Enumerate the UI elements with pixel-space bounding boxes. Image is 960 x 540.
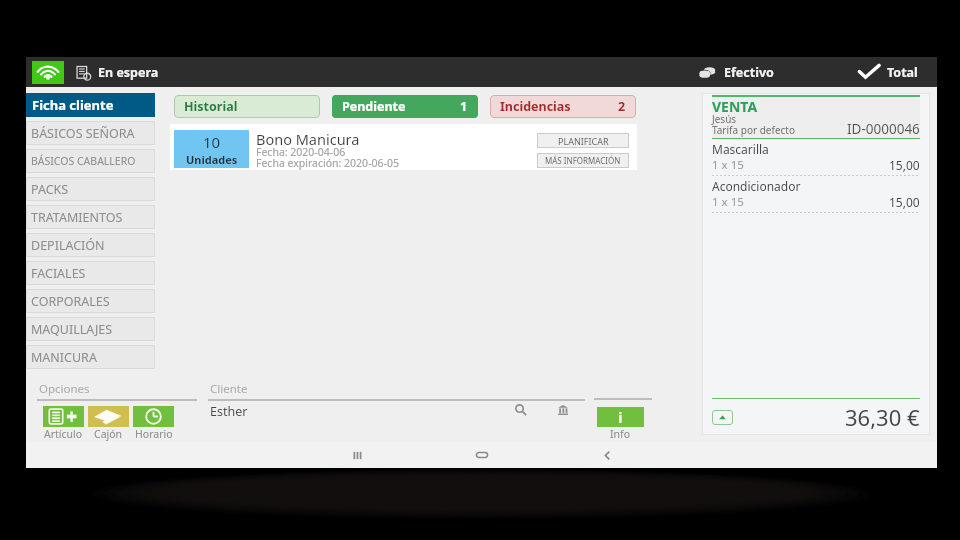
staticText: Fecha expiración: 2020-06-05 bbox=[256, 156, 399, 170]
button[interactable]: Incidencias bbox=[490, 95, 636, 118]
button[interactable]: Ficha cliente bbox=[26, 93, 155, 117]
button[interactable]: MÁS INFORMACIÓN bbox=[537, 153, 629, 168]
staticText: 1 x 15 bbox=[712, 194, 744, 210]
staticText: Pendiente bbox=[342, 98, 406, 115]
staticText: PACKS bbox=[31, 181, 69, 198]
staticText: Cliente bbox=[210, 381, 248, 397]
button[interactable]: Recientes bbox=[327, 442, 387, 468]
staticText: Bono Manicura bbox=[256, 129, 360, 149]
staticText: FACIALES bbox=[31, 265, 86, 282]
staticText: TRATAMIENTOS bbox=[31, 209, 123, 226]
staticText: Efectivo bbox=[724, 64, 774, 81]
button[interactable]: MANICURA bbox=[26, 345, 155, 369]
button[interactable]: Total bbox=[858, 57, 918, 87]
staticText: 2 bbox=[618, 98, 626, 115]
staticText: BÁSICOS CABALLERO bbox=[31, 154, 136, 168]
button[interactable]: PACKS bbox=[26, 177, 155, 201]
staticText: MAQUILLAJES bbox=[31, 321, 113, 338]
staticText: BÁSICOS SEÑORA bbox=[31, 125, 135, 142]
staticText: Esther bbox=[210, 403, 248, 420]
staticText: Info bbox=[610, 427, 631, 441]
staticText: 15,00 bbox=[889, 194, 920, 210]
staticText: Unidades bbox=[186, 152, 238, 167]
staticText: VENTA bbox=[712, 97, 758, 116]
button[interactable]: Eliminar bbox=[551, 398, 575, 422]
staticText: i bbox=[618, 407, 623, 427]
button[interactable]: PLANIFICAR bbox=[537, 133, 629, 148]
staticText: Fecha: 2020-04-06 bbox=[256, 145, 346, 159]
staticText: Cajón bbox=[94, 427, 123, 441]
staticText: Opciones bbox=[39, 381, 90, 397]
staticText: 36,30 € bbox=[845, 402, 920, 432]
staticText: Jesús bbox=[712, 112, 737, 126]
button[interactable]: Buscar bbox=[509, 398, 533, 422]
button[interactable]: Atrás bbox=[577, 442, 637, 468]
button[interactable]: 10 bbox=[170, 124, 637, 170]
staticText: Horario bbox=[135, 427, 173, 441]
staticText: MÁS INFORMACIÓN bbox=[545, 155, 621, 166]
staticText: Ficha cliente bbox=[32, 96, 114, 114]
staticText: Incidencias bbox=[500, 98, 571, 115]
button[interactable]: En espera bbox=[76, 57, 159, 87]
staticText: DEPILACIÓN bbox=[31, 237, 105, 254]
button[interactable]: Cajón bbox=[88, 406, 129, 441]
button[interactable]: MAQUILLAJES bbox=[26, 317, 155, 341]
button[interactable]: i bbox=[597, 407, 644, 441]
button[interactable]: Inicio bbox=[452, 442, 512, 468]
staticText: 1 x 15 bbox=[712, 157, 744, 173]
staticText: MANICURA bbox=[31, 349, 97, 366]
staticText: En espera bbox=[98, 64, 159, 81]
staticText: Acondicionador bbox=[712, 178, 801, 194]
button[interactable]: Artículo bbox=[43, 406, 84, 441]
staticText: 10 bbox=[203, 132, 221, 152]
staticText: 15,00 bbox=[889, 157, 920, 173]
staticText: Tarifa por defecto bbox=[712, 123, 795, 137]
button[interactable]: Historial bbox=[174, 95, 320, 118]
button[interactable]: BÁSICOS CABALLERO bbox=[26, 149, 155, 173]
button[interactable]: FACIALES bbox=[26, 261, 155, 285]
button[interactable]: Horario bbox=[133, 406, 174, 441]
staticText: Total bbox=[887, 64, 918, 81]
button[interactable]: Mascarilla bbox=[712, 139, 920, 176]
button[interactable]: Efectivo bbox=[698, 57, 774, 87]
button[interactable]: WiFi bbox=[32, 61, 64, 84]
button[interactable]: BÁSICOS SEÑORA bbox=[26, 121, 155, 145]
button[interactable]: CORPORALES bbox=[26, 289, 155, 313]
staticText: PLANIFICAR bbox=[558, 135, 609, 147]
button[interactable]: Pendiente bbox=[332, 95, 478, 118]
staticText: Artículo bbox=[44, 427, 83, 441]
button[interactable]: DEPILACIÓN bbox=[26, 233, 155, 257]
button[interactable]: Expandir bbox=[712, 410, 733, 425]
staticText: Mascarilla bbox=[712, 141, 769, 157]
button[interactable]: Acondicionador bbox=[712, 176, 920, 213]
staticText: Historial bbox=[184, 98, 238, 115]
staticText: ID-0000046 bbox=[847, 120, 920, 138]
button[interactable]: TRATAMIENTOS bbox=[26, 205, 155, 229]
staticText: CORPORALES bbox=[31, 293, 110, 310]
staticText: 1 bbox=[460, 98, 468, 115]
